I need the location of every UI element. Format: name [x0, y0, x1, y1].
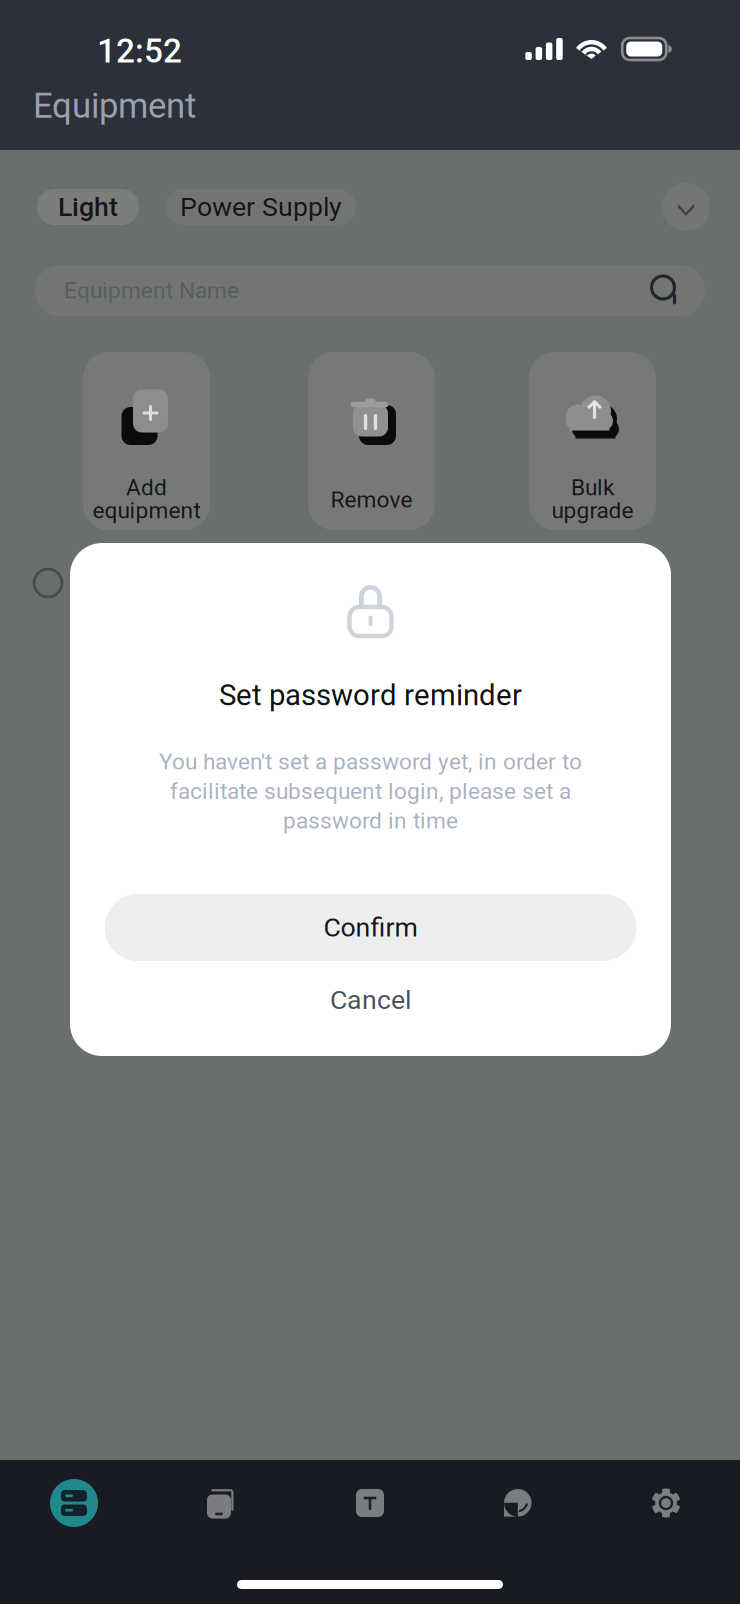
staticText: Cancel — [330, 984, 411, 1016]
staticText: facilitate subsequent login, please set … — [170, 778, 571, 804]
button[interactable]: Confirm — [104, 894, 636, 961]
button[interactable]: Add — [83, 352, 210, 530]
staticText: Remove — [330, 486, 412, 513]
button[interactable]: Templates — [296, 1470, 444, 1536]
button[interactable]: Settings — [592, 1470, 740, 1536]
button[interactable]: Remove — [308, 352, 435, 530]
staticText: Confirm — [323, 912, 417, 943]
staticText: Power Supply — [180, 191, 342, 223]
staticText: Add — [126, 474, 167, 501]
staticText: Equipment Name — [64, 277, 239, 304]
button[interactable]: Equipment Name — [35, 265, 705, 316]
staticText: equipment — [92, 497, 200, 524]
button[interactable]: Power Supply — [166, 189, 356, 225]
staticText: 12:52 — [97, 31, 182, 71]
staticText: Equipment — [33, 86, 196, 126]
staticText: Bulk — [571, 474, 614, 501]
button[interactable]: Bulk — [529, 352, 656, 530]
staticText: password in time — [283, 807, 458, 834]
button[interactable]: Equipment — [0, 1470, 148, 1536]
staticText: Set password reminder — [219, 678, 522, 712]
button[interactable]: Groups — [148, 1470, 296, 1536]
button[interactable]: Light — [37, 189, 139, 225]
button[interactable]: Messages — [444, 1470, 592, 1536]
staticText: You haven't set a password yet, in order… — [159, 748, 582, 775]
staticText: Light — [58, 191, 118, 223]
staticText: upgrade — [551, 497, 633, 524]
button[interactable]: More filters — [662, 183, 710, 231]
button[interactable]: Cancel — [104, 974, 636, 1026]
